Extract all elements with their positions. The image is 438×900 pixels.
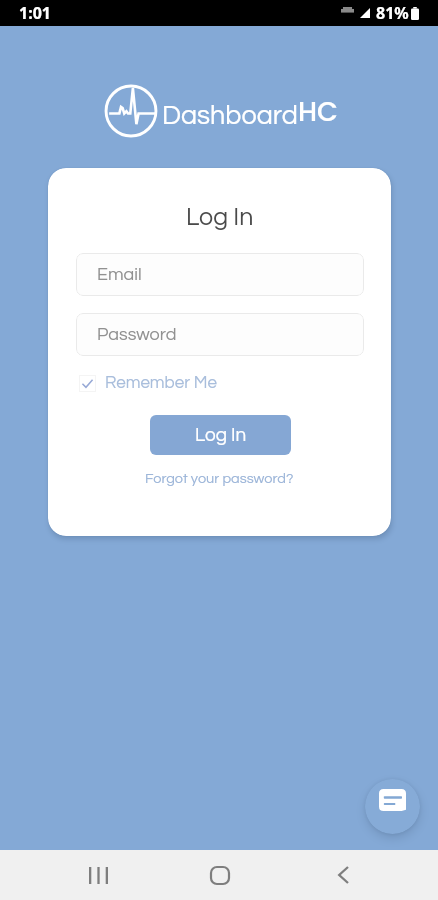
staticText: HC	[298, 93, 338, 131]
button[interactable]: Remember Me	[79, 374, 217, 392]
staticText: 1:01	[19, 2, 51, 24]
button[interactable]: Password	[76, 313, 364, 356]
button[interactable]: Forgot your password?	[145, 471, 294, 486]
button[interactable]: Recent apps	[70, 857, 126, 893]
staticText: Email	[97, 265, 142, 284]
staticText: Password	[97, 325, 177, 344]
button[interactable]: Email	[76, 253, 364, 296]
staticText: 81%	[376, 2, 409, 24]
staticText: Remember Me	[105, 374, 217, 392]
button[interactable]: Log In	[150, 415, 291, 455]
button[interactable]: Back	[315, 857, 371, 893]
button[interactable]: Open chat	[365, 779, 420, 834]
button[interactable]: Home	[192, 857, 248, 893]
staticText: Dashboard	[162, 102, 298, 130]
staticText: Log In	[195, 425, 247, 445]
staticText: Log In	[186, 204, 254, 230]
